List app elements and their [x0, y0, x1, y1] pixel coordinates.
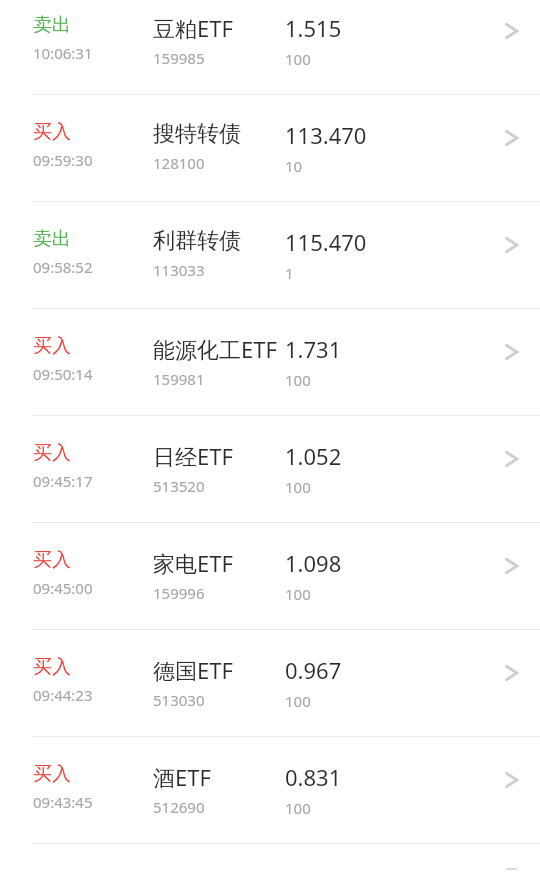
staticText: 0.831 — [285, 762, 342, 792]
button[interactable]: 卖出 — [0, 0, 540, 94]
staticText: 1.731 — [285, 334, 342, 364]
staticText: 100 — [285, 584, 311, 604]
other: 查看详情 — [486, 548, 540, 584]
staticText: 1 — [285, 263, 294, 283]
staticText: 搜特转债 — [153, 120, 241, 148]
staticText: 日经ETF — [153, 441, 233, 471]
staticText: 512690 — [153, 797, 205, 817]
staticText: 09:50:14 — [33, 364, 93, 384]
staticText: 100 — [285, 49, 311, 69]
button[interactable]: 买入 — [0, 523, 540, 629]
staticText: 买入 — [33, 120, 71, 144]
staticText: 买入 — [33, 441, 71, 465]
button[interactable]: 卖出 — [0, 202, 540, 308]
staticText: 159985 — [153, 48, 205, 68]
button[interactable]: 买入 — [0, 416, 540, 522]
staticText: 10 — [285, 156, 303, 176]
staticText: 100 — [285, 370, 311, 390]
staticText: 115.470 — [285, 227, 367, 257]
staticText: 513030 — [153, 690, 205, 710]
staticText: 1.098 — [285, 548, 342, 578]
staticText: 买入 — [33, 762, 71, 786]
other: 查看详情 — [486, 120, 540, 156]
staticText: 159981 — [153, 369, 205, 389]
staticText: 09:59:30 — [33, 150, 93, 170]
staticText: 买入 — [33, 655, 71, 679]
button[interactable]: 买入 — [0, 630, 540, 736]
staticText: 09:45:00 — [33, 578, 93, 598]
button[interactable]: 买入 — [0, 95, 540, 201]
staticText: 09:44:23 — [33, 685, 93, 705]
staticText: 100 — [285, 798, 311, 818]
staticText: 100 — [285, 477, 311, 497]
staticText: 买入 — [33, 548, 71, 572]
staticText: 德国ETF — [153, 655, 233, 685]
other: 查看详情 — [486, 762, 540, 798]
other: 查看详情 — [486, 441, 540, 477]
staticText: 128100 — [153, 153, 205, 173]
staticText: 1.515 — [285, 13, 342, 43]
staticText: 能源化工ETF — [153, 334, 277, 364]
staticText: 159996 — [153, 583, 205, 603]
staticText: 100 — [285, 691, 311, 711]
staticText: 豆粕ETF — [153, 13, 233, 43]
staticText: 09:43:45 — [33, 792, 93, 812]
other: 查看详情 — [486, 13, 540, 49]
staticText: 113033 — [153, 260, 205, 280]
other: 查看详情 — [486, 227, 540, 263]
staticText: 113.470 — [285, 120, 367, 150]
button[interactable]: 买入 — [0, 737, 540, 843]
staticText: 家电ETF — [153, 548, 233, 578]
staticText: 酒ETF — [153, 762, 211, 792]
other: 查看详情 — [486, 655, 540, 691]
staticText: 卖出 — [33, 13, 71, 37]
staticText: 10:06:31 — [33, 43, 93, 63]
staticText: 09:45:17 — [33, 471, 93, 491]
staticText: 09:58:52 — [33, 257, 93, 277]
staticText: 买入 — [33, 334, 71, 358]
other: 查看详情 — [486, 334, 540, 370]
staticText: 0.967 — [285, 655, 342, 685]
staticText: 利群转债 — [153, 227, 241, 255]
button[interactable]: 买入 — [0, 309, 540, 415]
staticText: 卖出 — [33, 227, 71, 251]
staticText: 1.052 — [285, 441, 342, 471]
staticText: 513520 — [153, 476, 205, 496]
